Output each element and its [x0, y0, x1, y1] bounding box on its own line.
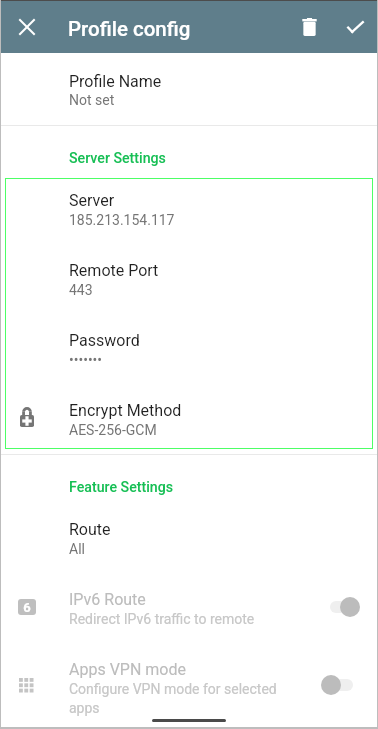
staticText: 443	[69, 282, 369, 298]
staticText: Server	[69, 191, 115, 210]
staticText: Configure VPN mode for selected apps	[69, 681, 299, 716]
button[interactable]: 6	[0, 575, 378, 640]
staticText: Remote Port	[69, 261, 159, 280]
staticText: Profile config	[68, 17, 191, 41]
button[interactable]: Save	[332, 0, 378, 53]
staticText: Not set	[69, 92, 369, 108]
button[interactable]: Remote Port	[0, 248, 378, 318]
staticText: 185.213.154.117	[69, 212, 369, 228]
staticText: Apps VPN mode	[69, 660, 186, 679]
button[interactable]: Apps VPN mode	[0, 645, 378, 715]
staticText: Redirect IPv6 traffic to remote	[69, 611, 369, 627]
button[interactable]: Profile Name	[0, 62, 378, 125]
staticText: IPv6 Route	[69, 590, 146, 609]
staticText: Route	[69, 520, 111, 539]
button[interactable]: Delete	[286, 0, 332, 53]
staticText: Feature Settings	[69, 479, 174, 496]
button[interactable]: Encrypt Method	[0, 388, 378, 448]
staticText: Profile Name	[69, 72, 162, 91]
staticText: Encrypt Method	[69, 401, 182, 420]
staticText: •••••••	[69, 352, 369, 368]
button[interactable]: Close	[0, 0, 54, 53]
staticText: All	[69, 541, 369, 557]
button[interactable]: Server	[0, 178, 378, 248]
button[interactable]: Password	[0, 318, 378, 388]
button[interactable]: Route	[0, 505, 378, 563]
staticText: Password	[69, 331, 140, 350]
staticText: AES-256-GCM	[69, 422, 369, 438]
staticText: 6	[23, 600, 31, 615]
staticText: Server Settings	[69, 150, 166, 167]
